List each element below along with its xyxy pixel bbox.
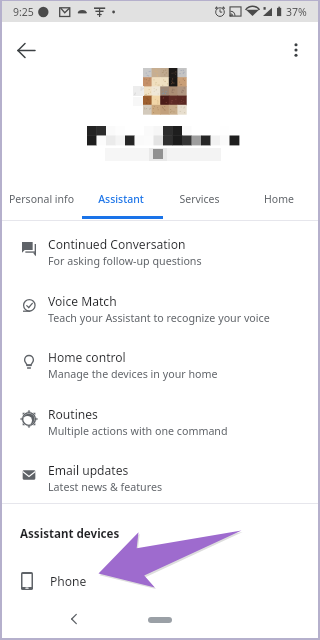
button[interactable]: Personal info xyxy=(2,182,81,216)
button[interactable]: Email updates xyxy=(2,450,318,506)
staticText: Manage the devices in your home xyxy=(48,367,218,382)
staticText: Home control xyxy=(48,349,126,365)
button[interactable]: Assistant xyxy=(81,182,160,216)
staticText: Personal info xyxy=(9,192,74,206)
staticText: Latest news & features xyxy=(48,480,163,495)
staticText: Home xyxy=(264,192,294,206)
button[interactable]: Routines xyxy=(2,394,318,450)
staticText: Phone xyxy=(50,573,87,589)
button[interactable]: Back xyxy=(62,607,86,631)
staticText: Routines xyxy=(48,406,98,422)
staticText: For asking follow-up questions xyxy=(48,254,202,269)
staticText: 37% xyxy=(286,5,307,19)
staticText: Assistant devices xyxy=(20,526,120,542)
button[interactable]: Home xyxy=(148,617,172,623)
staticText: Voice Match xyxy=(48,293,117,309)
staticText: 9:25 xyxy=(13,5,34,19)
staticText: Email updates xyxy=(48,462,129,478)
button[interactable]: Continued Conversation xyxy=(2,224,318,280)
button[interactable]: Home control xyxy=(2,337,318,393)
staticText: Continued Conversation xyxy=(48,236,186,252)
staticText: Assistant xyxy=(98,192,144,206)
staticText: Services xyxy=(179,192,220,206)
staticText: Teach your Assistant to recognize your v… xyxy=(48,311,270,326)
button[interactable]: More options xyxy=(280,34,312,66)
button[interactable]: Services xyxy=(160,182,239,216)
button[interactable]: Voice Match xyxy=(2,281,318,337)
button[interactable]: Phone xyxy=(2,564,318,598)
button[interactable]: Home xyxy=(239,182,318,216)
staticText: Multiple actions with one command xyxy=(48,424,228,439)
button[interactable]: Back xyxy=(10,34,42,66)
